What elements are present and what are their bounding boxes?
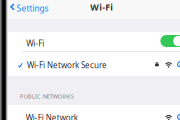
button[interactable] (0, 105, 180, 120)
button[interactable] (0, 52, 180, 76)
staticText: Wi-Fi Network Secure (27, 60, 107, 71)
button[interactable]: Network details (177, 114, 180, 120)
button[interactable] (0, 32, 180, 51)
staticText: PUBLIC NETWORKS (20, 92, 74, 100)
staticText: Settings (16, 2, 48, 14)
staticText: Wi-Fi Network (26, 112, 78, 120)
button[interactable]: Network details (177, 61, 180, 67)
button[interactable]: Settings (0, 0, 52, 19)
staticText: Wi-Fi (26, 38, 44, 49)
staticText: Wi-Fi (90, 1, 113, 13)
